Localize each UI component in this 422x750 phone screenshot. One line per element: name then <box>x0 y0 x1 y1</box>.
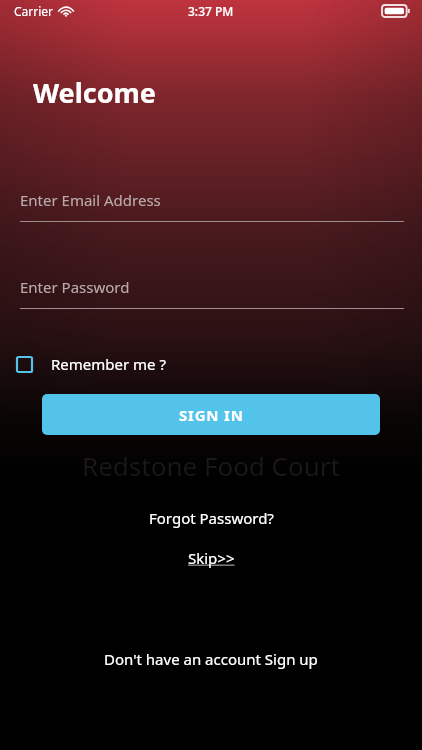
other: Wi-Fi signal <box>59 6 73 17</box>
staticText: Redstone Food Court <box>0 448 422 483</box>
button[interactable]: Don't have an account Sign up <box>94 645 328 673</box>
staticText: 3:37 PM <box>188 3 234 19</box>
staticText: Carrier <box>14 3 54 19</box>
staticText: Welcome <box>33 74 156 111</box>
staticText: Enter Password <box>20 277 130 297</box>
button[interactable]: Skip>> <box>178 544 245 572</box>
button[interactable]: Remember me ? <box>16 351 174 377</box>
button[interactable]: Forgot Password? <box>139 504 284 532</box>
staticText: Enter Email Address <box>20 190 161 210</box>
button[interactable]: Enter Password <box>20 277 404 309</box>
other: Battery full <box>382 5 410 17</box>
staticText: Skip>> <box>188 548 235 568</box>
button[interactable]: Enter Email Address <box>20 190 404 222</box>
staticText: SIGN IN <box>179 405 244 425</box>
staticText: Remember me ? <box>51 354 166 374</box>
staticText: Forgot Password? <box>149 508 274 528</box>
button[interactable]: SIGN IN <box>42 394 380 435</box>
staticText: Don't have an account Sign up <box>104 649 318 669</box>
